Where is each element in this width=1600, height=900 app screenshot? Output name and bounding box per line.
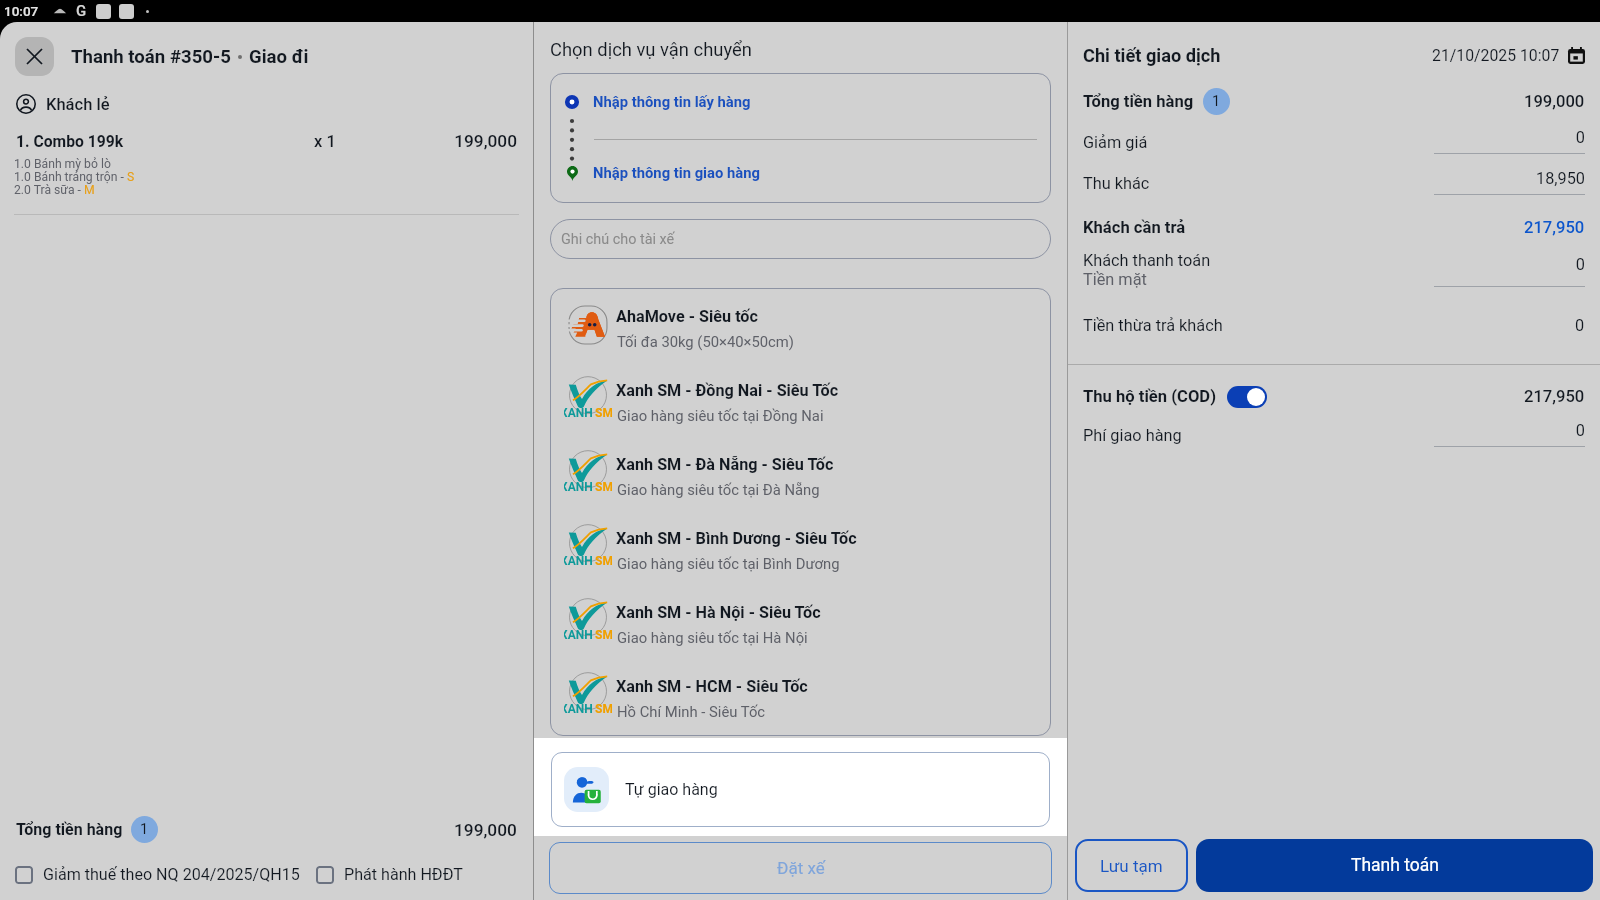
button[interactable]: Tự giao hàng: [551, 752, 1050, 827]
staticText: Hồ Chí Minh - Siêu Tốc: [617, 703, 766, 720]
staticText: SM: [595, 628, 612, 642]
staticText: Ghi chú cho tài xế: [561, 231, 675, 248]
staticText: 217,950: [1524, 387, 1585, 406]
staticText: Thu khác: [1083, 174, 1150, 193]
staticText: Tổng tiền hàng: [1083, 92, 1194, 111]
staticText: Xanh SM - Đồng Nai - Siêu Tốc: [616, 381, 839, 400]
button[interactable]: Thanh toán: [1196, 839, 1593, 892]
staticText: M: [84, 183, 95, 197]
staticText: Giao hàng siêu tốc tại Bình Dương: [617, 555, 840, 572]
button[interactable]: Ghi chú cho tài xế: [550, 219, 1051, 259]
staticText: XANH: [564, 702, 593, 716]
staticText: Chi tiết giao dịch: [1083, 45, 1221, 66]
button[interactable]: XANH: [550, 584, 1051, 658]
staticText: AhaMove - Siêu tốc: [616, 307, 758, 326]
staticText: Khách thanh toán: [1083, 251, 1211, 270]
staticText: Nhập thông tin lấy hàng: [593, 93, 751, 110]
staticText: 2.0 Trà sữa -: [14, 183, 84, 197]
staticText: Giao hàng siêu tốc tại Hà Nội: [617, 629, 808, 646]
staticText: 18,950: [1434, 169, 1585, 188]
staticText: Thu hộ tiền (COD): [1083, 387, 1216, 406]
staticText: G: [76, 2, 87, 20]
button[interactable]: XANH: [550, 362, 1051, 436]
staticText: 1.0 Bánh tráng trộn -: [14, 170, 127, 184]
staticText: SM: [595, 702, 612, 716]
button[interactable]: AhaMove - Siêu tốc: [550, 288, 1051, 362]
staticText: Phí giao hàng: [1083, 426, 1182, 445]
staticText: Giao đi: [249, 46, 309, 68]
staticText: 199,000: [454, 820, 517, 840]
staticText: Giao hàng siêu tốc tại Đà Nẵng: [617, 481, 820, 498]
button[interactable]: 18,950: [1434, 169, 1585, 195]
staticText: 217,950: [1524, 218, 1585, 237]
staticText: XANH: [564, 480, 593, 494]
staticText: Giảm thuế theo NQ 204/2025/QH15: [43, 865, 300, 884]
button[interactable]: 0: [1434, 421, 1585, 447]
staticText: Xanh SM - HCM - Siêu Tốc: [616, 677, 808, 696]
staticText: 199,000: [1524, 92, 1585, 111]
staticText: SM: [595, 554, 612, 568]
button[interactable]: Khách lẻ: [16, 94, 110, 114]
staticText: 0: [1434, 128, 1585, 147]
button[interactable]: Nhập thông tin lấy hàng: [564, 93, 751, 110]
button[interactable]: Đóng: [15, 37, 54, 76]
staticText: XANH: [564, 554, 593, 568]
staticText: Lưu tạm: [1100, 856, 1163, 876]
staticText: Tự giao hàng: [625, 780, 718, 799]
staticText: 10:07: [4, 3, 39, 19]
staticText: 1.0 Bánh mỳ bỏ lò: [14, 157, 111, 171]
button[interactable]: XANH: [550, 510, 1051, 584]
staticText: Xanh SM - Đà Nẵng - Siêu Tốc: [616, 455, 834, 474]
button[interactable]: XANH: [550, 436, 1051, 510]
staticText: Giao hàng siêu tốc tại Đồng Nai: [617, 407, 824, 424]
staticText: 1: [140, 821, 149, 838]
staticText: Khách lẻ: [46, 95, 110, 114]
button[interactable]: Chọn ngày: [1568, 47, 1585, 64]
staticText: S: [127, 170, 135, 184]
button[interactable]: XANH: [550, 658, 1051, 732]
staticText: Tổng tiền hàng: [16, 820, 123, 839]
staticText: 0: [1575, 316, 1585, 335]
button[interactable]: Phát hành HĐĐT: [316, 865, 463, 884]
staticText: 21/10/2025 10:07: [1432, 46, 1560, 65]
staticText: Giảm giá: [1083, 133, 1148, 152]
staticText: Tiền mặt: [1083, 270, 1147, 289]
staticText: Xanh SM - Hà Nội - Siêu Tốc: [616, 603, 821, 622]
staticText: Thanh toán #350-5: [71, 46, 231, 68]
button[interactable]: 0: [1434, 255, 1585, 287]
button[interactable]: Giảm thuế theo NQ 204/2025/QH15: [15, 865, 300, 884]
button[interactable]: 0: [1434, 128, 1585, 154]
staticText: SM: [595, 406, 612, 420]
staticText: 199,000: [454, 131, 517, 151]
staticText: Chọn dịch vụ vận chuyển: [550, 39, 752, 61]
staticText: Thanh toán: [1351, 855, 1439, 876]
staticText: SM: [595, 480, 612, 494]
staticText: Xanh SM - Bình Dương - Siêu Tốc: [616, 529, 857, 548]
button[interactable]: Lưu tạm: [1075, 839, 1188, 892]
staticText: Nhập thông tin giao hàng: [593, 164, 760, 181]
staticText: XANH: [564, 628, 593, 642]
staticText: Khách cần trả: [1083, 218, 1186, 237]
staticText: Tiền thừa trả khách: [1083, 316, 1223, 335]
button[interactable]: Đặt xế: [549, 842, 1052, 894]
staticText: 0: [1434, 421, 1585, 440]
staticText: Tối đa 30kg (50×40×50cm): [617, 333, 794, 350]
staticText: 1: [1212, 93, 1221, 110]
staticText: Đặt xế: [777, 858, 825, 878]
button[interactable]: [1227, 386, 1267, 408]
staticText: XANH: [564, 406, 593, 420]
staticText: Phát hành HĐĐT: [344, 865, 463, 884]
staticText: x 1: [314, 132, 454, 151]
staticText: 1. Combo 199k: [16, 132, 314, 150]
button[interactable]: Nhập thông tin giao hàng: [564, 164, 760, 181]
staticText: 0: [1434, 255, 1585, 274]
